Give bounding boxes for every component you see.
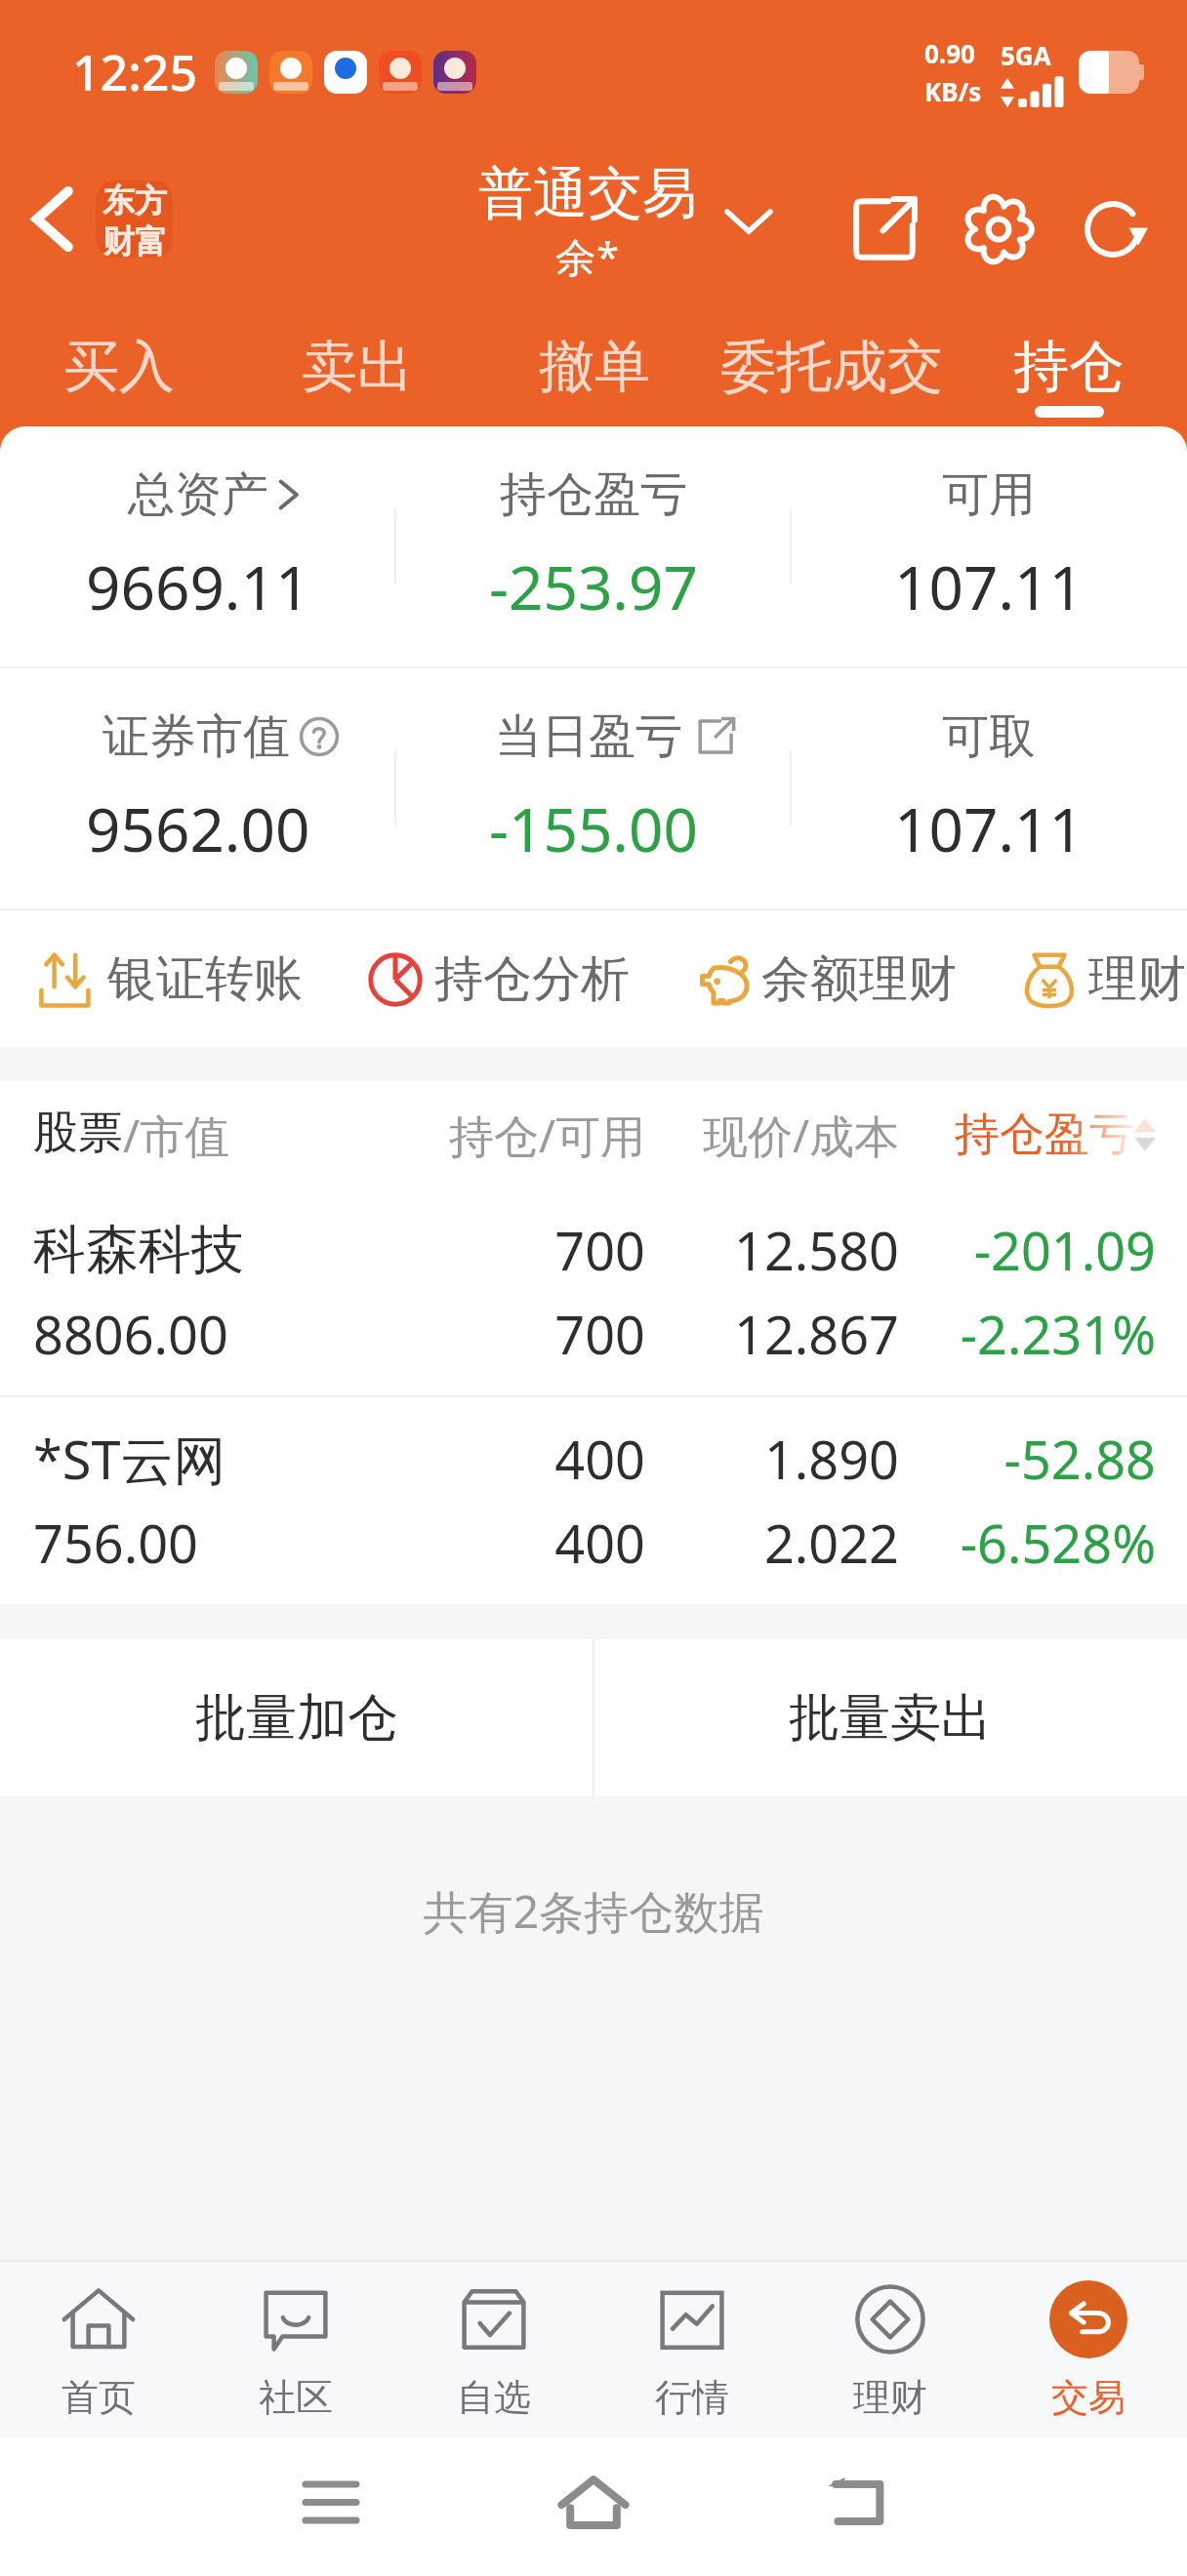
button[interactable]: *ST云网 — [0, 1397, 1187, 1604]
staticText: *ST云网 — [33, 1423, 391, 1495]
button[interactable] — [433, 51, 476, 94]
button[interactable]: 批量卖出 — [593, 1639, 1187, 1796]
staticText: 股票 — [33, 1105, 123, 1161]
staticText: 5GA — [1001, 38, 1051, 72]
staticText: -2.231% — [899, 1298, 1156, 1370]
button[interactable]: 持仓盈亏 — [395, 465, 791, 627]
staticText: 12.867 — [645, 1298, 899, 1370]
button[interactable]: 理财 — [1020, 948, 1186, 1010]
staticText: 700 — [391, 1214, 645, 1286]
button[interactable]: 总资产 — [0, 465, 395, 627]
staticText: 买入 — [63, 332, 175, 402]
button[interactable]: Share — [827, 172, 941, 286]
staticText: 撤单 — [539, 332, 650, 402]
button[interactable]: 余额理财 — [693, 948, 957, 1010]
button[interactable]: Back — [802, 2448, 910, 2556]
button[interactable]: 东方 — [96, 181, 173, 258]
staticText: -201.09 — [899, 1214, 1156, 1286]
staticText: 持仓分析 — [434, 948, 630, 1010]
staticText: 8806.00 — [33, 1298, 391, 1370]
staticText: 持仓 — [1013, 332, 1125, 402]
button[interactable]: 交易 — [989, 2262, 1187, 2438]
button[interactable]: 持仓 — [950, 312, 1187, 426]
staticText: 可取 — [942, 707, 1036, 766]
button[interactable]: 科森科技 — [0, 1188, 1187, 1395]
staticText: 107.11 — [894, 787, 1084, 869]
staticText: 107.11 — [894, 545, 1084, 627]
button[interactable]: 持仓分析 — [366, 948, 630, 1010]
button[interactable]: 当日盈亏 — [395, 707, 791, 869]
staticText: 400 — [391, 1507, 645, 1579]
staticText: 行情 — [655, 2374, 729, 2421]
staticText: 12:25 — [72, 39, 197, 105]
staticText: 批量卖出 — [789, 1686, 992, 1751]
staticText: 证券市值 — [102, 707, 290, 766]
button[interactable]: 理财 — [791, 2262, 989, 2438]
staticText: 科森科技 — [33, 1217, 391, 1283]
button[interactable]: 批量加仓 — [0, 1639, 593, 1796]
staticText: 持仓/可用 — [391, 1105, 645, 1166]
staticText: 银证转账 — [107, 948, 303, 1010]
staticText: 交易 — [1051, 2374, 1126, 2421]
button[interactable]: 自选 — [394, 2262, 593, 2438]
staticText: 批量加仓 — [195, 1686, 398, 1751]
staticText: 9562.00 — [86, 787, 310, 869]
staticText: 700 — [391, 1298, 645, 1370]
button[interactable] — [324, 51, 367, 94]
staticText: 9669.11 — [86, 545, 310, 627]
button[interactable]: Settings — [941, 172, 1055, 286]
button[interactable]: 银证转账 — [39, 948, 303, 1010]
staticText: 共有2条持仓数据 — [0, 1880, 1187, 1942]
staticText: 2.022 — [645, 1507, 899, 1579]
button[interactable]: 卖出 — [238, 312, 475, 426]
staticText: 持仓盈亏 — [955, 1107, 1134, 1163]
button[interactable]: Back — [8, 175, 96, 262]
button[interactable] — [215, 51, 258, 94]
staticText: 东方 — [102, 181, 167, 221]
staticText: 自选 — [457, 2374, 531, 2421]
button[interactable]: 可用 — [791, 465, 1187, 627]
staticText: 12.580 — [645, 1214, 899, 1286]
staticText: -52.88 — [899, 1423, 1156, 1495]
staticText: KB/s — [924, 74, 982, 108]
button[interactable]: 普通交易 — [478, 159, 697, 284]
staticText: 1.890 — [645, 1423, 899, 1495]
staticText: 委托成交 — [720, 332, 943, 402]
staticText: -6.528% — [899, 1507, 1156, 1579]
button[interactable]: 证券市值 — [0, 707, 395, 869]
button[interactable]: 撤单 — [475, 312, 713, 426]
button[interactable]: 社区 — [197, 2262, 394, 2438]
staticText: 理财 — [853, 2374, 927, 2421]
button[interactable]: 可取 — [791, 707, 1187, 869]
staticText: 财富 — [102, 221, 167, 258]
staticText: 持仓盈亏 — [500, 465, 687, 524]
staticText: -155.00 — [489, 787, 698, 869]
staticText: 0.90 — [924, 36, 975, 70]
button[interactable]: 买入 — [0, 312, 238, 426]
button[interactable]: 行情 — [593, 2262, 791, 2438]
staticText: 余* — [555, 228, 620, 284]
button[interactable]: Recents — [277, 2448, 385, 2556]
staticText: 总资产 — [128, 465, 268, 524]
staticText: 首页 — [61, 2374, 136, 2421]
staticText: 社区 — [259, 2374, 333, 2421]
staticText: 卖出 — [302, 332, 413, 402]
staticText: 756.00 — [33, 1507, 391, 1579]
button[interactable] — [269, 51, 312, 94]
staticText: 可用 — [942, 465, 1036, 524]
staticText: 普通交易 — [478, 159, 697, 228]
staticText: 理财 — [1088, 948, 1186, 1010]
staticText: 当日盈亏 — [495, 707, 682, 766]
button[interactable]: 持仓盈亏 — [955, 1107, 1156, 1163]
button[interactable]: Refresh — [1055, 172, 1169, 286]
staticText: 400 — [391, 1423, 645, 1495]
staticText: /市值 — [123, 1105, 230, 1166]
staticText: -253.97 — [489, 545, 698, 627]
button[interactable]: 首页 — [0, 2262, 197, 2438]
staticText: 余额理财 — [761, 948, 957, 1010]
button[interactable]: Switch account — [715, 187, 783, 256]
button[interactable] — [379, 51, 422, 94]
button[interactable]: Home — [540, 2448, 647, 2556]
staticText: 现价/成本 — [645, 1105, 899, 1166]
button[interactable]: 委托成交 — [713, 312, 950, 426]
